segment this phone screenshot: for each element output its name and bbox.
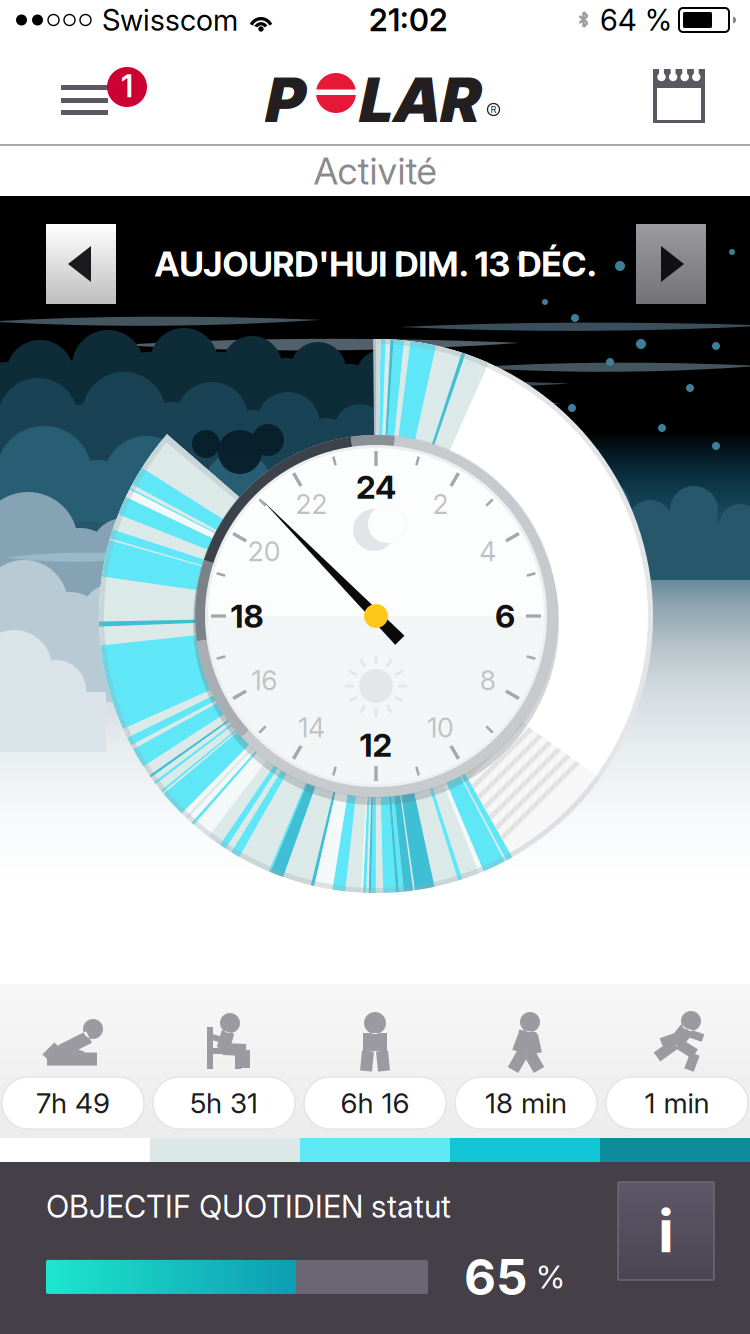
- button[interactable]: Menu: [61, 63, 149, 121]
- staticText: 18: [230, 597, 263, 635]
- staticText: OBJECTIF QUOTIDIEN statut: [46, 1188, 451, 1225]
- staticText: 10: [427, 712, 454, 744]
- staticText: 12: [359, 726, 392, 764]
- staticText: 65: [464, 1247, 528, 1307]
- button[interactable]: Previous day: [46, 224, 116, 304]
- staticText: i: [658, 1195, 674, 1266]
- staticText: 22: [295, 488, 327, 520]
- staticText: 1 min: [644, 1086, 709, 1120]
- staticText: 8: [480, 664, 496, 697]
- staticText: 64 %: [600, 2, 672, 38]
- staticText: 18 min: [485, 1086, 567, 1120]
- staticText: P LAR: [265, 63, 480, 137]
- button[interactable]: 7h 49: [0, 1009, 146, 1131]
- staticText: 2: [432, 488, 448, 520]
- button[interactable]: Next day: [636, 224, 706, 304]
- staticText: Swisscom: [102, 2, 238, 38]
- staticText: 7h 49: [36, 1086, 110, 1120]
- staticText: 1: [121, 67, 133, 104]
- staticText: 6: [495, 597, 515, 635]
- staticText: 21:02: [369, 1, 448, 38]
- staticText: R: [490, 104, 496, 115]
- button[interactable]: Info: [618, 1182, 714, 1280]
- staticText: 20: [248, 535, 281, 568]
- staticText: Activité: [313, 148, 436, 194]
- staticText: 4: [479, 535, 496, 568]
- staticText: 24: [356, 468, 396, 506]
- staticText: 6h 16: [340, 1086, 409, 1120]
- staticText: 5h 31: [190, 1086, 258, 1120]
- staticText: AUJOURD'HUI DIM. 13 DÉC.: [154, 243, 597, 285]
- staticText: 14: [298, 712, 325, 744]
- button[interactable]: 1 min: [604, 1009, 750, 1131]
- staticText: %: [536, 1258, 565, 1296]
- button[interactable]: 18 min: [453, 1009, 599, 1131]
- button[interactable]: Calendar: [639, 51, 719, 133]
- staticText: 16: [251, 664, 277, 697]
- button[interactable]: 5h 31: [151, 1009, 297, 1131]
- button[interactable]: 6h 16: [302, 1009, 448, 1131]
